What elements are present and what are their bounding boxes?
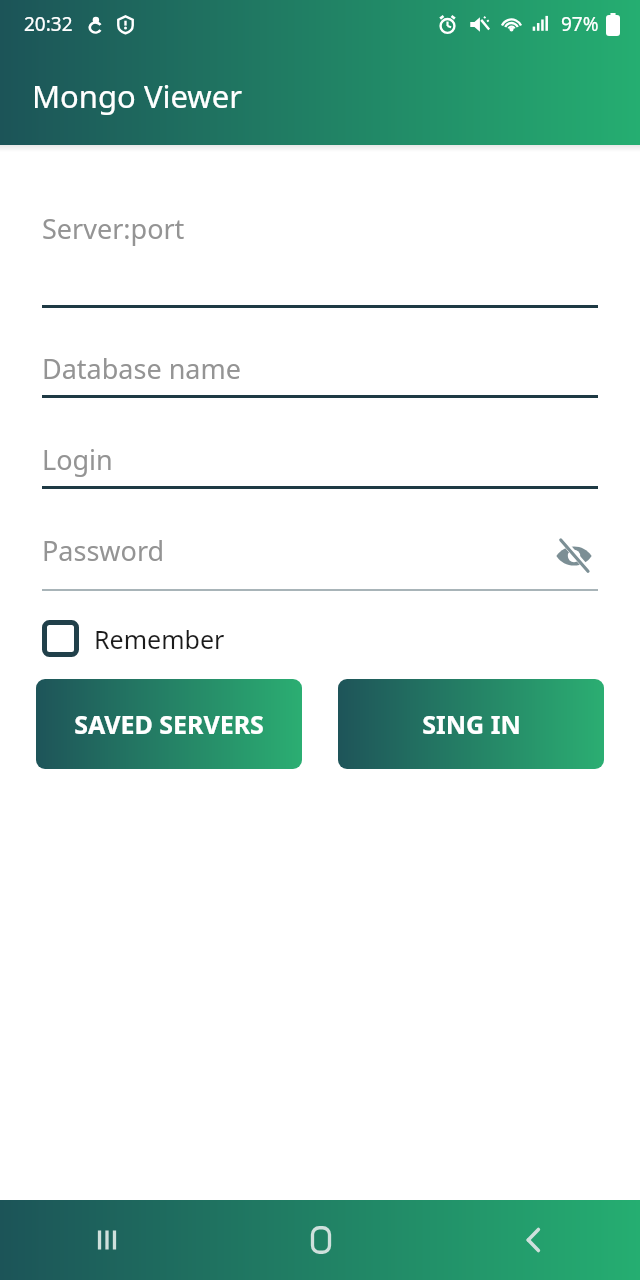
- button[interactable]: Login: [42, 441, 598, 478]
- button[interactable]: Back: [427, 1200, 640, 1280]
- button[interactable]: Password: [42, 532, 598, 580]
- button[interactable]: SAVED SERVERS: [36, 679, 302, 769]
- button[interactable]: Recents: [0, 1200, 214, 1280]
- button[interactable]: Server:port: [42, 210, 598, 247]
- staticText: Login: [42, 441, 113, 478]
- staticText: Server:port: [42, 210, 185, 247]
- staticText: 97%: [561, 11, 599, 37]
- staticText: Database name: [42, 350, 241, 387]
- staticText: Password: [42, 532, 165, 569]
- staticText: SING IN: [422, 707, 521, 741]
- staticText: Remember: [94, 622, 225, 656]
- button[interactable]: Home: [214, 1200, 427, 1280]
- staticText: Mongo Viewer: [32, 75, 243, 117]
- button[interactable]: Toggle password visibility: [550, 532, 598, 580]
- staticText: 20:32: [24, 11, 73, 37]
- button[interactable]: Database name: [42, 350, 598, 387]
- button[interactable]: Remember: [42, 620, 225, 657]
- button[interactable]: SING IN: [338, 679, 604, 769]
- staticText: SAVED SERVERS: [74, 707, 264, 741]
